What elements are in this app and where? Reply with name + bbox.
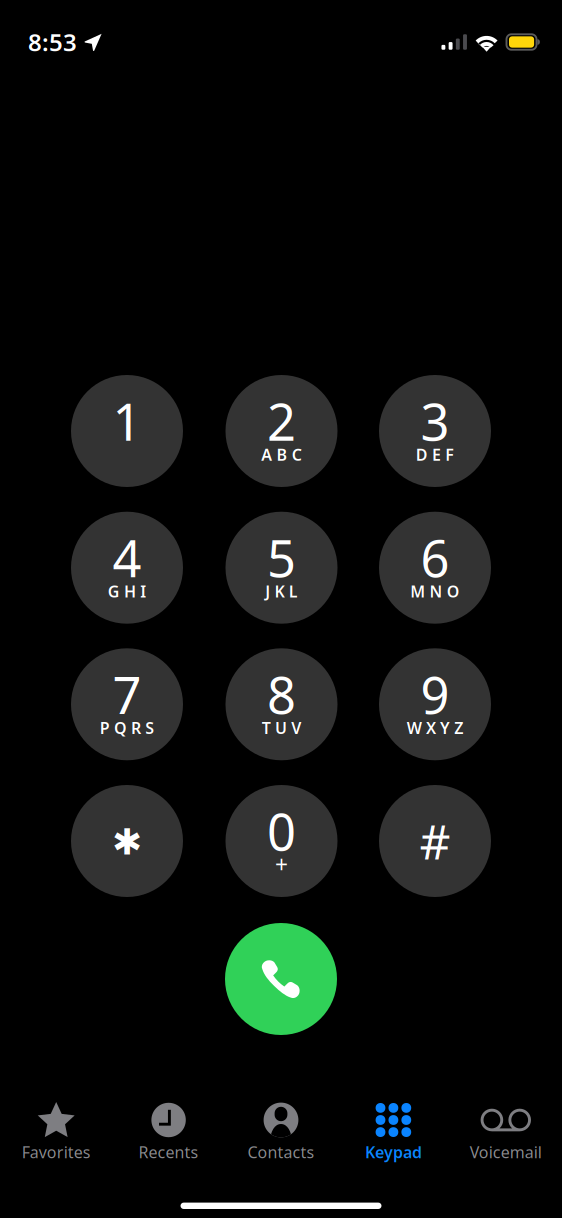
staticText: 1 bbox=[112, 387, 141, 455]
button[interactable]: Voicemail bbox=[450, 1100, 562, 1162]
staticText: Y bbox=[440, 717, 450, 738]
staticText: D bbox=[416, 444, 428, 465]
staticText: ✱ bbox=[112, 822, 142, 862]
staticText: 8 bbox=[267, 661, 296, 728]
button[interactable]: 9 bbox=[379, 648, 491, 760]
staticText: R bbox=[131, 717, 141, 738]
button[interactable]: Call bbox=[225, 923, 337, 1035]
staticText: Voicemail bbox=[470, 1141, 542, 1163]
staticText: 9 bbox=[420, 661, 449, 728]
staticText: V bbox=[291, 717, 301, 738]
staticText: X bbox=[426, 717, 436, 738]
button[interactable]: 4 bbox=[71, 512, 183, 624]
staticText: T bbox=[262, 717, 271, 738]
staticText: Keypad bbox=[365, 1141, 422, 1163]
staticText: E bbox=[432, 444, 441, 465]
button[interactable]: ✱ bbox=[71, 785, 183, 897]
staticText: Contacts bbox=[247, 1141, 314, 1163]
staticText: 3 bbox=[420, 387, 449, 455]
staticText: G bbox=[108, 581, 120, 602]
button[interactable]: 2 bbox=[225, 375, 337, 487]
staticText: B bbox=[276, 444, 287, 465]
button[interactable]: 7 bbox=[71, 648, 183, 760]
staticText: L bbox=[289, 581, 298, 602]
button[interactable]: 0 bbox=[225, 785, 337, 897]
button[interactable]: 8 bbox=[225, 648, 337, 760]
staticText: U bbox=[275, 717, 287, 738]
button[interactable]: Recents bbox=[112, 1100, 225, 1162]
button[interactable]: Favorites bbox=[0, 1100, 112, 1162]
button[interactable]: 5 bbox=[225, 512, 337, 624]
staticText: Q bbox=[114, 717, 127, 738]
button[interactable]: # bbox=[379, 785, 491, 897]
staticText: Recents bbox=[139, 1141, 199, 1163]
staticText: 4 bbox=[112, 524, 141, 591]
staticText: P bbox=[100, 717, 110, 738]
staticText: F bbox=[445, 444, 454, 465]
staticText: H bbox=[124, 581, 136, 602]
staticText: 5 bbox=[267, 524, 296, 591]
staticText: O bbox=[447, 581, 460, 602]
button[interactable]: Contacts bbox=[225, 1100, 337, 1162]
button[interactable]: 3 bbox=[379, 375, 491, 487]
staticText: # bbox=[419, 809, 450, 873]
staticText: 0 bbox=[267, 797, 296, 865]
staticText: 8:53 bbox=[28, 26, 77, 58]
staticText: K bbox=[274, 581, 284, 602]
staticText: C bbox=[292, 444, 302, 465]
button[interactable]: 6 bbox=[379, 512, 491, 624]
staticText: A bbox=[261, 444, 272, 465]
staticText: J bbox=[265, 581, 270, 602]
button[interactable]: 1 bbox=[71, 375, 183, 487]
staticText: M bbox=[410, 581, 425, 602]
staticText: I bbox=[140, 581, 146, 602]
staticText: + bbox=[275, 849, 288, 879]
button[interactable]: Keypad bbox=[337, 1100, 450, 1162]
staticText: 6 bbox=[420, 524, 449, 591]
staticText: Z bbox=[454, 717, 463, 738]
staticText: 2 bbox=[267, 387, 296, 455]
staticText: N bbox=[429, 581, 442, 602]
staticText: Favorites bbox=[22, 1141, 91, 1163]
staticText: W bbox=[407, 717, 422, 738]
staticText: 7 bbox=[112, 661, 141, 728]
staticText: S bbox=[145, 717, 154, 738]
